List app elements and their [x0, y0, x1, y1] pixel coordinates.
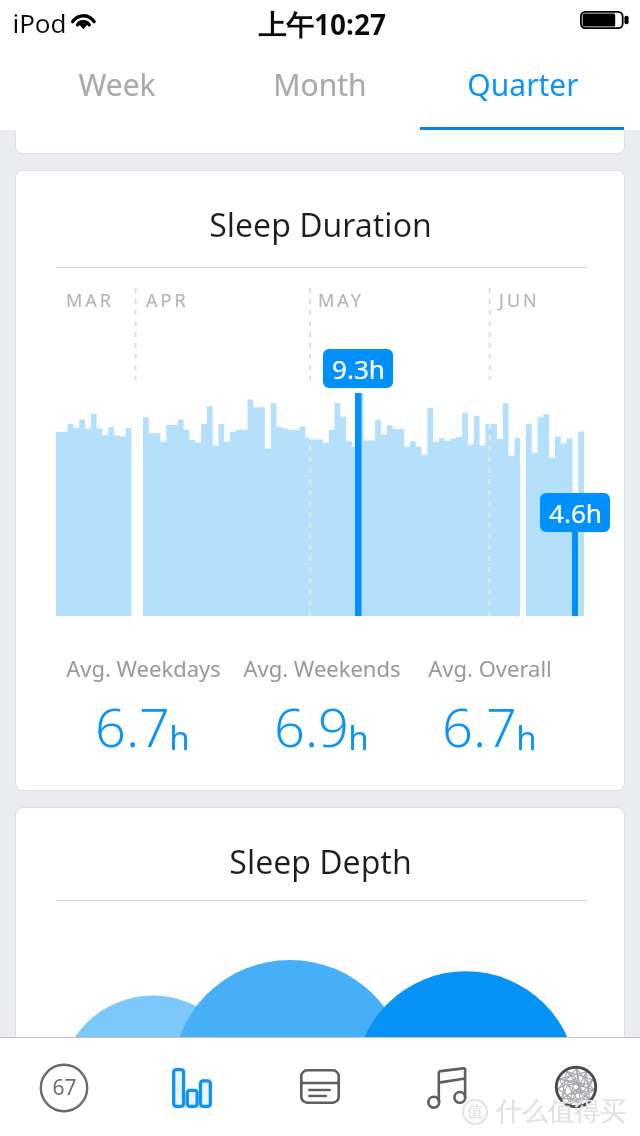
staticText: 值 — [467, 1102, 483, 1122]
staticText: h — [348, 715, 369, 760]
button[interactable]: Month — [218, 44, 422, 130]
button[interactable]: Statistics — [128, 1037, 256, 1136]
staticText: Sleep Depth — [229, 840, 412, 884]
staticText: 4.6h — [549, 495, 602, 530]
staticText: 6.9 — [274, 689, 349, 763]
staticText: 上午10:27 — [258, 5, 386, 43]
staticText: MAY — [318, 288, 364, 313]
staticText: h — [169, 715, 190, 760]
button[interactable]: Quarter — [422, 44, 640, 130]
button[interactable]: Network — [512, 1037, 640, 1136]
button[interactable]: Sleep score — [0, 1037, 128, 1136]
staticText: 67 — [52, 1073, 77, 1102]
staticText: Week — [78, 64, 156, 105]
button[interactable]: Sounds — [384, 1037, 512, 1136]
staticText: 6.7 — [95, 689, 170, 763]
staticText: Avg. Overall — [428, 653, 552, 683]
staticText: Month — [273, 64, 367, 105]
staticText: h — [516, 715, 537, 760]
staticText: 什么值得买 — [496, 1095, 626, 1128]
staticText: 6.7 — [442, 689, 517, 763]
staticText: Quarter — [467, 64, 579, 105]
staticText: Avg. Weekdays — [66, 653, 221, 683]
button[interactable]: Week — [0, 44, 218, 130]
staticText: APR — [146, 288, 189, 313]
staticText: Avg. Weekends — [243, 653, 401, 683]
staticText: MAR — [66, 288, 115, 313]
staticText: iPod — [12, 5, 67, 40]
staticText: JUN — [499, 288, 540, 313]
staticText: 9.3h — [332, 351, 385, 386]
staticText: Sleep Duration — [209, 203, 432, 247]
button[interactable]: Notes — [256, 1037, 384, 1136]
